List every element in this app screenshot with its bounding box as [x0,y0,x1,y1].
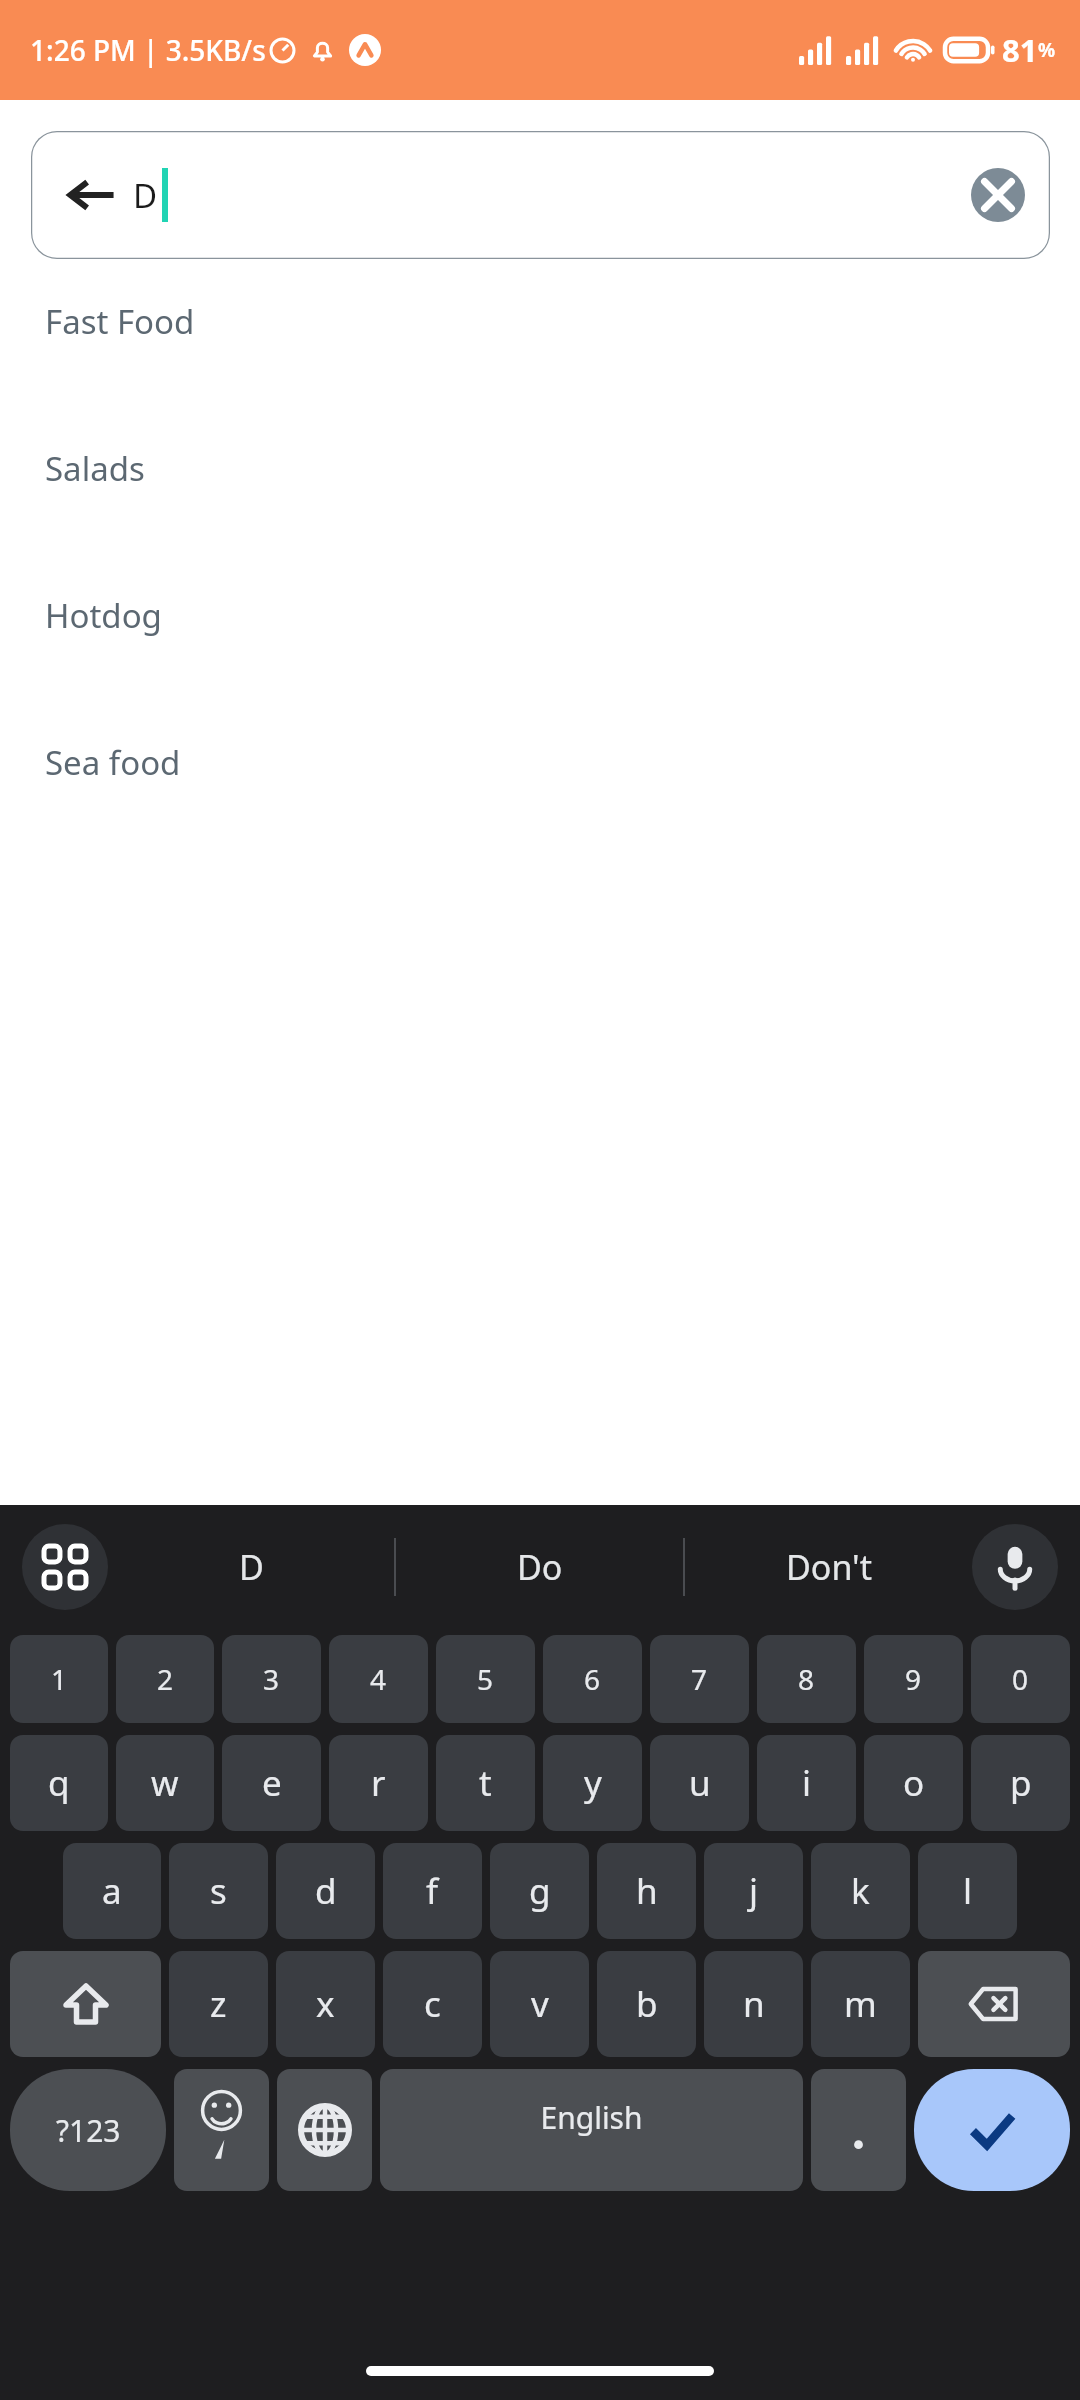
button[interactable]: z [169,1951,268,2057]
staticText: m [844,1980,877,2028]
staticText: z [210,1980,227,2028]
button[interactable]: Hotdog [0,593,1080,740]
button[interactable]: Shift [10,1951,161,2057]
button[interactable]: Keyboard options [22,1524,108,1610]
button[interactable]: r [329,1735,428,1831]
button[interactable]: v [490,1951,589,2057]
button[interactable]: l [918,1843,1017,1939]
staticText: 81 [1002,29,1038,71]
button[interactable]: Back [31,131,1050,259]
button[interactable]: t [436,1735,535,1831]
staticText: 4 [370,1660,387,1698]
staticText: 8 [798,1660,815,1698]
staticText: D [133,173,158,218]
button[interactable]: b [597,1951,696,2057]
staticText: 1 [51,1660,68,1698]
staticText: r [371,1759,386,1807]
staticText: d [315,1867,337,1915]
button[interactable]: Voice input [972,1524,1058,1610]
staticText: o [903,1759,925,1807]
button[interactable]: Do [396,1505,683,1629]
button[interactable]: Enter [914,2069,1070,2191]
staticText: x [316,1980,335,2028]
button[interactable]: ?123 [10,2069,166,2191]
button[interactable]: Salads [0,446,1080,593]
button[interactable]: 7 [650,1635,749,1723]
staticText: h [636,1867,658,1915]
staticText: 2 [157,1660,174,1698]
staticText: 3 [263,1660,280,1698]
button[interactable]: Backspace [918,1951,1070,2057]
button[interactable]: c [383,1951,482,2057]
button[interactable]: 6 [543,1635,642,1723]
button[interactable]: 4 [329,1635,428,1723]
button[interactable]: 0 [971,1635,1070,1723]
staticText: Salads [45,446,145,491]
staticText: t [479,1759,492,1807]
button[interactable]: 9 [864,1635,963,1723]
button[interactable]: 3 [222,1635,321,1723]
button[interactable]: Change language [277,2069,372,2191]
button[interactable]: Sea food [0,740,1080,887]
staticText: g [529,1867,551,1915]
staticText: w [151,1759,179,1807]
button[interactable]: Emoji [174,2069,269,2191]
staticText: 1:26 PM | 3.5KB/s [30,31,266,69]
button[interactable]: Back [63,167,119,223]
button[interactable]: Fast Food [0,299,1080,446]
button[interactable]: j [704,1843,803,1939]
staticText: l [963,1867,973,1915]
staticText: e [262,1759,282,1807]
staticText: English [540,2097,643,2138]
staticText: a [102,1867,122,1915]
staticText: v [531,1980,549,2028]
staticText: Sea food [45,740,181,785]
staticText: 5 [477,1660,494,1698]
button[interactable]: s [169,1843,268,1939]
button[interactable]: Period [811,2069,906,2191]
staticText: 0 [1012,1660,1029,1698]
button[interactable]: p [971,1735,1070,1831]
staticText: k [851,1867,870,1915]
button[interactable]: k [811,1843,910,1939]
button[interactable]: 2 [116,1635,214,1723]
staticText: c [424,1980,441,2028]
staticText: Hotdog [45,593,162,638]
button[interactable]: i [757,1735,856,1831]
button[interactable]: m [811,1951,910,2057]
button[interactable]: o [864,1735,963,1831]
staticText: ?123 [56,2110,121,2151]
button[interactable]: 1 [10,1635,108,1723]
staticText: j [749,1867,759,1915]
button[interactable]: x [276,1951,375,2057]
button[interactable]: f [383,1843,482,1939]
staticText: y [584,1759,602,1807]
staticText: D [239,1544,264,1590]
button[interactable]: u [650,1735,749,1831]
button[interactable]: 5 [436,1635,535,1723]
button[interactable]: Clear text [970,167,1026,223]
button[interactable]: y [543,1735,642,1831]
button[interactable]: n [704,1951,803,2057]
staticText: p [1010,1759,1032,1807]
staticText: u [689,1759,711,1807]
staticText: s [210,1867,227,1915]
staticText: 9 [905,1660,922,1698]
staticText: % [1038,37,1056,63]
staticText: 6 [584,1660,601,1698]
staticText: n [743,1980,765,2028]
button[interactable]: Don't [685,1505,972,1629]
button[interactable]: g [490,1843,589,1939]
button[interactable]: 8 [757,1635,856,1723]
button[interactable]: e [222,1735,321,1831]
button[interactable]: D [108,1505,394,1629]
button[interactable]: q [10,1735,108,1831]
button[interactable]: h [597,1843,696,1939]
staticText: Do [517,1544,563,1590]
staticText: q [48,1759,70,1807]
button[interactable]: w [116,1735,214,1831]
staticText: b [636,1980,658,2028]
button[interactable]: a [63,1843,161,1939]
button[interactable]: English [380,2069,803,2191]
button[interactable]: d [276,1843,375,1939]
